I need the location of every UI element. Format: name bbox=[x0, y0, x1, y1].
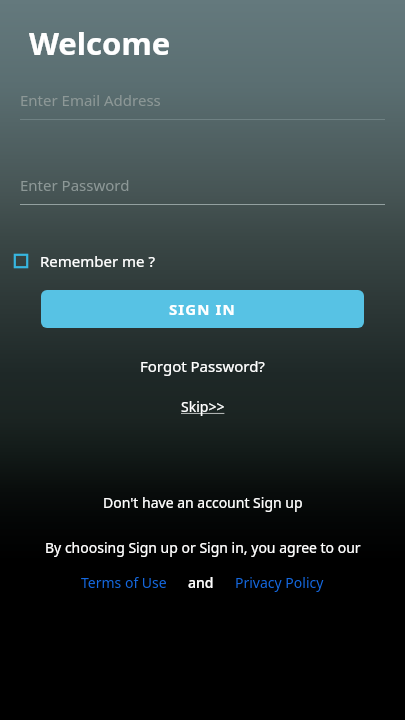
button[interactable]: SIGN IN bbox=[41, 290, 364, 328]
button[interactable]: Terms of Use bbox=[77, 571, 171, 594]
button[interactable]: Skip>> bbox=[173, 395, 233, 418]
staticText: Forgot Password? bbox=[140, 356, 265, 376]
button[interactable]: Don't have an account Sign up bbox=[95, 491, 311, 514]
staticText: Enter Password bbox=[20, 175, 130, 195]
staticText: Privacy Policy bbox=[235, 573, 324, 592]
button[interactable]: Forgot Password? bbox=[132, 354, 273, 378]
staticText: Welcome bbox=[29, 22, 171, 64]
button[interactable]: Remember me ? bbox=[14, 249, 165, 273]
button[interactable]: Privacy Policy bbox=[231, 571, 328, 594]
button[interactable]: Enter Email Address bbox=[20, 90, 385, 120]
staticText: Enter Email Address bbox=[20, 90, 161, 110]
staticText: and bbox=[188, 573, 214, 592]
staticText: Remember me ? bbox=[40, 251, 155, 271]
staticText: By choosing Sign up or Sign in, you agre… bbox=[45, 538, 361, 557]
staticText: SIGN IN bbox=[169, 299, 236, 319]
button[interactable]: Enter Password bbox=[20, 175, 385, 205]
staticText: Terms of Use bbox=[81, 573, 167, 592]
staticText: Skip>> bbox=[181, 397, 225, 416]
staticText: Don't have an account Sign up bbox=[103, 493, 303, 512]
